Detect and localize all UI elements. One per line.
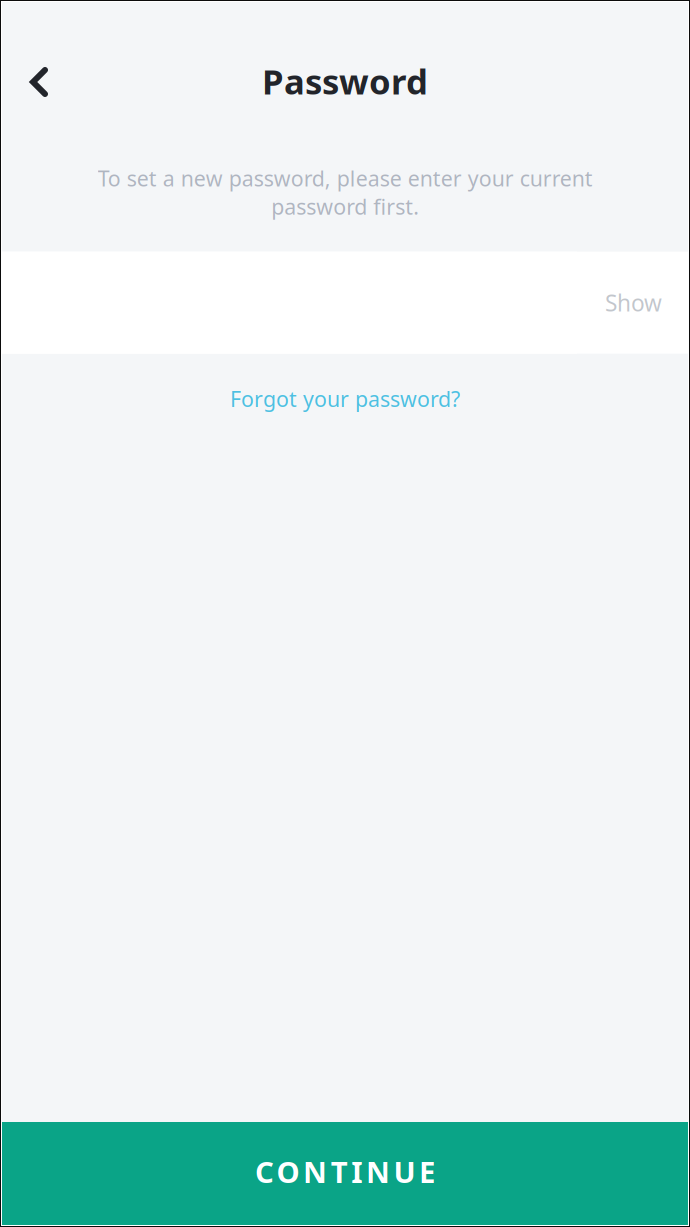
staticText: Show (605, 288, 662, 318)
button[interactable]: Back (6, 51, 72, 111)
staticText: Forgot your password? (230, 384, 460, 413)
staticText: Password (262, 58, 428, 104)
staticText: CONTINUE (255, 1152, 435, 1191)
button[interactable]: CONTINUE (0, 1122, 690, 1227)
button[interactable]: Show (577, 252, 690, 354)
button[interactable]: Forgot your password? (0, 354, 690, 444)
staticText: To set a new password, please enter your… (97, 164, 592, 221)
button[interactable]: Current password (0, 252, 577, 354)
